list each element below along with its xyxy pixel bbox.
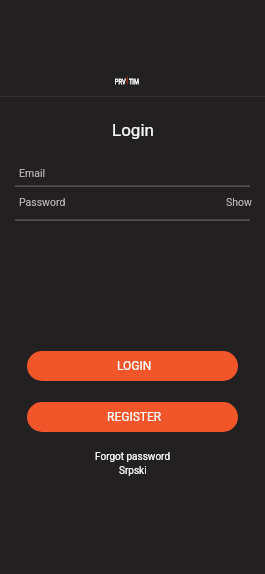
button[interactable]: LOGIN <box>27 351 238 381</box>
button[interactable]: Forgot password <box>95 451 171 463</box>
staticText: Password <box>19 196 66 208</box>
staticText: PRV <box>115 77 126 86</box>
staticText: REGISTER <box>107 410 162 424</box>
staticText: I <box>126 76 128 87</box>
staticText: TIM <box>129 77 139 86</box>
staticText: Email <box>19 167 45 179</box>
staticText: Login <box>112 120 154 140</box>
button[interactable]: Email <box>13 162 252 185</box>
button[interactable]: REGISTER <box>27 402 238 432</box>
button[interactable]: Prvi Tim logo <box>108 75 146 88</box>
staticText: LOGIN <box>117 359 152 373</box>
button[interactable]: Show <box>226 196 252 208</box>
button[interactable]: Srpski <box>119 465 147 477</box>
